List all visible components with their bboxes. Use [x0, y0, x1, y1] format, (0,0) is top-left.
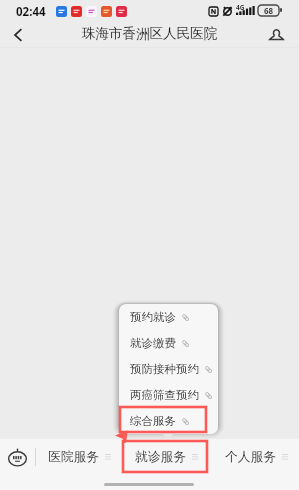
staticText: 预约就诊: [130, 310, 176, 324]
button[interactable]: 预约就诊: [119, 304, 218, 330]
button[interactable]: 就诊缴费: [119, 330, 218, 356]
button[interactable]: 综合服务: [119, 408, 218, 434]
staticText: 两癌筛查预约: [130, 388, 199, 402]
button[interactable]: 医院服务: [42, 439, 116, 475]
staticText: 4G: [236, 3, 245, 12]
staticText: 68: [264, 5, 274, 16]
staticText: 就诊服务: [135, 449, 187, 465]
button[interactable]: Profile: [263, 22, 289, 48]
button[interactable]: Back: [5, 22, 31, 48]
staticText: 个人服务: [225, 449, 277, 465]
button[interactable]: 两癌筛查预约: [119, 382, 218, 408]
button[interactable]: 就诊服务: [129, 439, 203, 475]
staticText: 综合服务: [130, 414, 176, 428]
button[interactable]: 个人服务: [219, 439, 293, 475]
button[interactable]: Voice assistant: [5, 439, 30, 475]
staticText: 医院服务: [48, 449, 100, 465]
staticText: 预防接种预约: [130, 362, 199, 376]
button[interactable]: 预防接种预约: [119, 356, 218, 382]
staticText: 就诊缴费: [130, 336, 176, 350]
staticText: 02:44: [16, 4, 46, 20]
staticText: 珠海市香洲区人民医院: [0, 25, 299, 42]
